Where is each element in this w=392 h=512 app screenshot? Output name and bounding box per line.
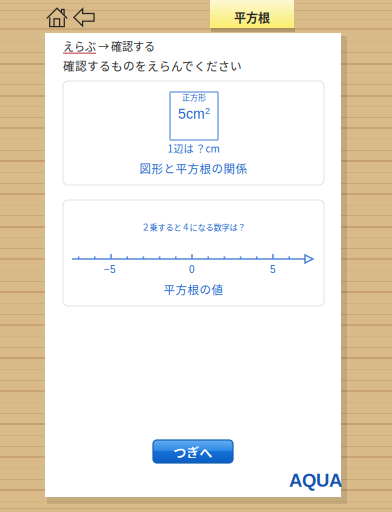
staticText: 平方根の値 bbox=[163, 281, 223, 298]
staticText: 1辺は ？cm bbox=[167, 141, 219, 155]
staticText: → 確認する bbox=[96, 38, 155, 54]
staticText: 5 bbox=[270, 264, 276, 275]
staticText: 5cm bbox=[178, 106, 205, 122]
staticText: えらぶ bbox=[63, 38, 96, 54]
button[interactable]: もどる bbox=[73, 6, 95, 28]
staticText: AQUA bbox=[289, 470, 342, 491]
staticText: 0 bbox=[189, 264, 195, 275]
staticText: −5 bbox=[104, 264, 116, 275]
staticText: 正方形 bbox=[182, 91, 206, 103]
staticText: 2 bbox=[205, 106, 210, 116]
button[interactable]: ホーム bbox=[46, 6, 68, 28]
staticText: 平方根 bbox=[234, 9, 270, 26]
button[interactable]: 正方形 bbox=[63, 81, 324, 185]
button[interactable]: ２乗すると４になる数字は？ bbox=[63, 200, 324, 306]
staticText: 確認するものをえらんでください bbox=[63, 57, 242, 74]
button[interactable]: 平方根 bbox=[210, 0, 294, 28]
staticText: ２乗すると４になる数字は？ bbox=[141, 221, 245, 233]
button[interactable]: つぎへ bbox=[153, 440, 233, 463]
staticText: 図形と平方根の関係 bbox=[139, 160, 247, 177]
staticText: つぎへ bbox=[173, 442, 212, 461]
